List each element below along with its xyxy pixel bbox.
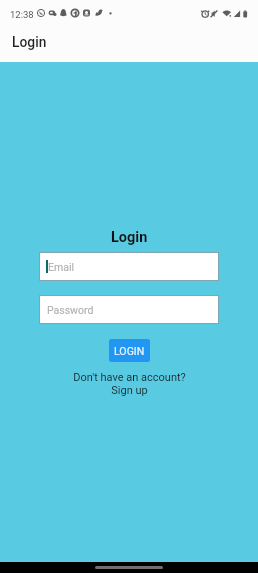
staticText: Don't have an account?	[73, 371, 186, 384]
staticText: LOGIN	[114, 345, 145, 357]
staticText: Login	[111, 229, 148, 246]
staticText: 12:38	[10, 9, 34, 20]
staticText: Email	[48, 261, 74, 273]
staticText: Login	[12, 34, 47, 50]
button[interactable]: LOGIN	[109, 339, 150, 362]
button[interactable]: Email	[39, 252, 219, 281]
button[interactable]: Sign up	[111, 384, 148, 397]
staticText: Password	[47, 304, 94, 316]
button[interactable]: Password	[39, 295, 219, 324]
staticText: Sign up	[111, 384, 148, 397]
